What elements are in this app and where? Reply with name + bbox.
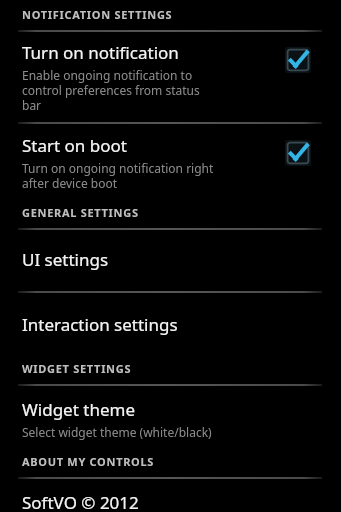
staticText: Enable ongoing notification to control p…	[22, 67, 200, 113]
button[interactable]: SoftVO © 2012	[0, 491, 341, 512]
button[interactable]: Widget theme	[0, 398, 341, 440]
staticText: UI settings	[22, 248, 109, 271]
staticText: Turn on notification	[22, 41, 179, 64]
staticText: Turn on ongoing notification right after…	[22, 160, 214, 191]
staticText: ABOUT MY CONTROLS	[22, 454, 155, 469]
staticText: Widget theme	[22, 398, 135, 421]
staticText: GENERAL SETTINGS	[22, 205, 139, 220]
staticText: Start on boot	[22, 134, 127, 157]
button[interactable]: Start on boot	[0, 134, 341, 191]
staticText: Select widget theme (white/black)	[22, 424, 212, 440]
button[interactable]: Toggle setting	[285, 140, 311, 166]
staticText: NOTIFICATION SETTINGS	[22, 7, 173, 22]
button[interactable]: UI settings	[0, 248, 341, 271]
staticText: SoftVO © 2012	[22, 491, 139, 512]
staticText: WIDGET SETTINGS	[22, 361, 132, 376]
button[interactable]: Interaction settings	[0, 313, 341, 336]
button[interactable]: Toggle setting	[285, 47, 311, 73]
button[interactable]: Turn on notification	[0, 41, 341, 113]
staticText: Interaction settings	[22, 313, 178, 336]
